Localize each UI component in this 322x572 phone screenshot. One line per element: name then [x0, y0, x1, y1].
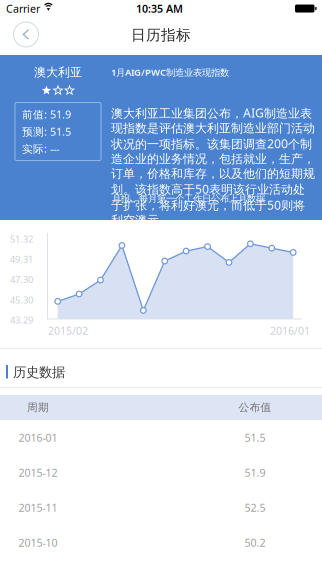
staticText: 历史数据	[13, 364, 65, 380]
staticText: 1月AIG/PWC制造业表现指数	[111, 66, 229, 78]
staticText: 49.31	[10, 253, 33, 265]
staticText: 10:35 AM	[136, 1, 183, 16]
staticText: 2015-10	[18, 535, 57, 550]
staticText: 2016-01	[18, 430, 57, 445]
staticText: 日历指标	[131, 26, 191, 44]
staticText: 周期	[27, 401, 49, 414]
staticText: 47.30	[10, 273, 33, 286]
staticText: 51.32	[10, 233, 33, 245]
staticText: 50.2	[244, 535, 265, 550]
button[interactable]: 2016-01	[0, 420, 322, 455]
staticText: 51.5	[244, 430, 265, 445]
staticText: 月报，每月第一个工作日公布上月数据	[112, 193, 265, 204]
staticText: 公布值	[238, 401, 271, 414]
staticText: 51.9	[244, 465, 265, 480]
staticText: 2015-11	[18, 500, 57, 515]
staticText: 2015-12	[18, 465, 57, 480]
staticText: 预测: 51.5	[22, 124, 71, 139]
staticText: 实际: ---	[22, 142, 59, 156]
button[interactable]: Back	[9, 20, 43, 48]
staticText: 澳大利亚工业集团公布，AIG制造业表现指数是评估澳大利亚制造业部门活动状况的一项…	[111, 105, 315, 228]
staticText: 2016/01	[270, 323, 310, 338]
staticText: 43.29	[10, 314, 33, 326]
staticText: 前值: 51.9	[22, 107, 71, 121]
staticText: Carrier	[6, 1, 40, 16]
button[interactable]: 2015-12	[0, 455, 322, 490]
button[interactable]: 2015-11	[0, 490, 322, 525]
staticText: 45.30	[10, 294, 33, 306]
staticText: 52.5	[244, 500, 265, 515]
staticText: 2015/02	[48, 323, 88, 338]
staticText: 澳大利亚	[34, 65, 82, 80]
button[interactable]: 2015-10	[0, 525, 322, 560]
